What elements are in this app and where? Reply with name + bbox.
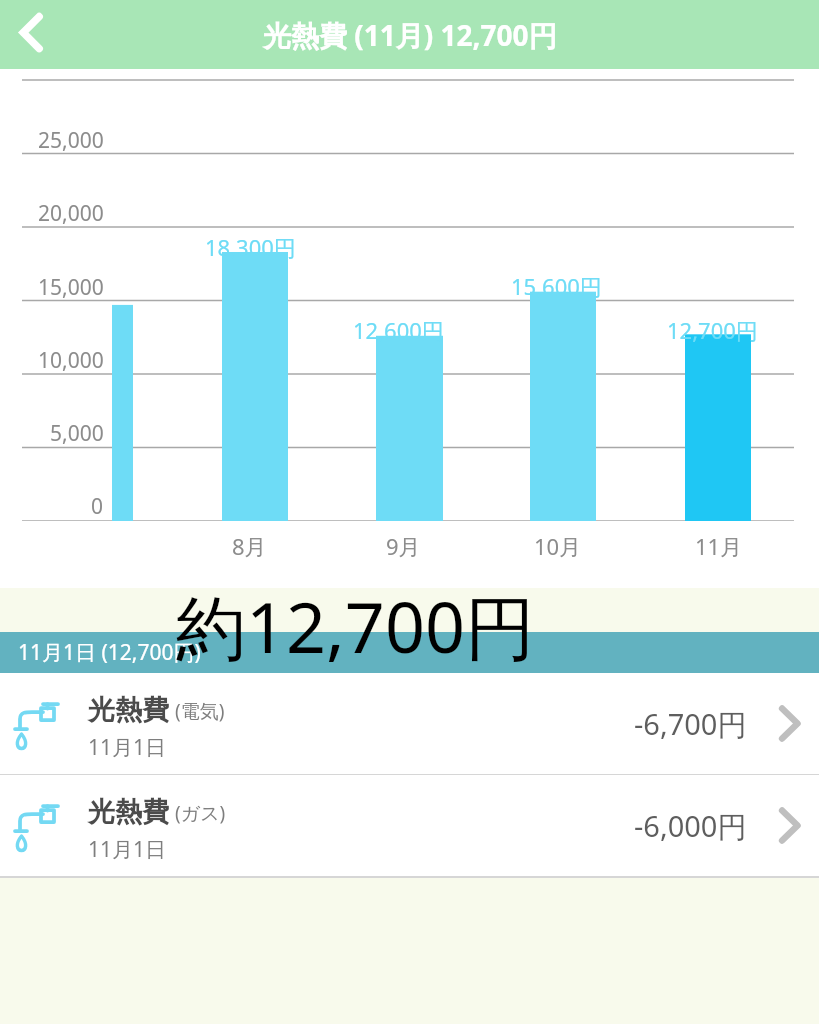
staticText: 光熱費 (88, 693, 169, 727)
staticText: 15,000 (38, 273, 104, 302)
staticText: 5,000 (50, 419, 104, 448)
staticText: 12,700円 (667, 315, 758, 345)
staticText: 光熱費 (88, 795, 169, 829)
staticText: 11月1日 (12,700円) (18, 638, 201, 667)
button[interactable]: Open detail (763, 673, 819, 774)
staticText: 11月1日 (88, 835, 167, 864)
staticText: -6,000円 (634, 806, 747, 846)
staticText: -6,700円 (634, 704, 747, 744)
staticText: 10月 (534, 531, 582, 561)
staticText: 10,000 (38, 346, 104, 375)
staticText: 光熱費 (11月) 12,700円 (263, 16, 557, 54)
button[interactable]: Open detail (763, 775, 819, 876)
staticText: 11月1日 (88, 733, 167, 762)
staticText: 0 (91, 492, 104, 521)
button[interactable]: Back (0, 5, 60, 65)
staticText: 15,600円 (511, 271, 602, 301)
staticText: (電気) (175, 698, 225, 724)
staticText: 20,000 (38, 199, 104, 228)
staticText: 12,600円 (353, 315, 444, 345)
button[interactable]: 光熱費 (0, 673, 819, 774)
button[interactable]: 光熱費 (0, 775, 819, 876)
staticText: 約12,700円 (176, 578, 535, 674)
staticText: 9月 (386, 531, 421, 561)
staticText: 25,000 (38, 126, 104, 155)
staticText: (ガス) (175, 800, 226, 826)
staticText: 18,300円 (205, 232, 296, 262)
staticText: 11月 (695, 531, 743, 561)
staticText: 8月 (232, 531, 267, 561)
